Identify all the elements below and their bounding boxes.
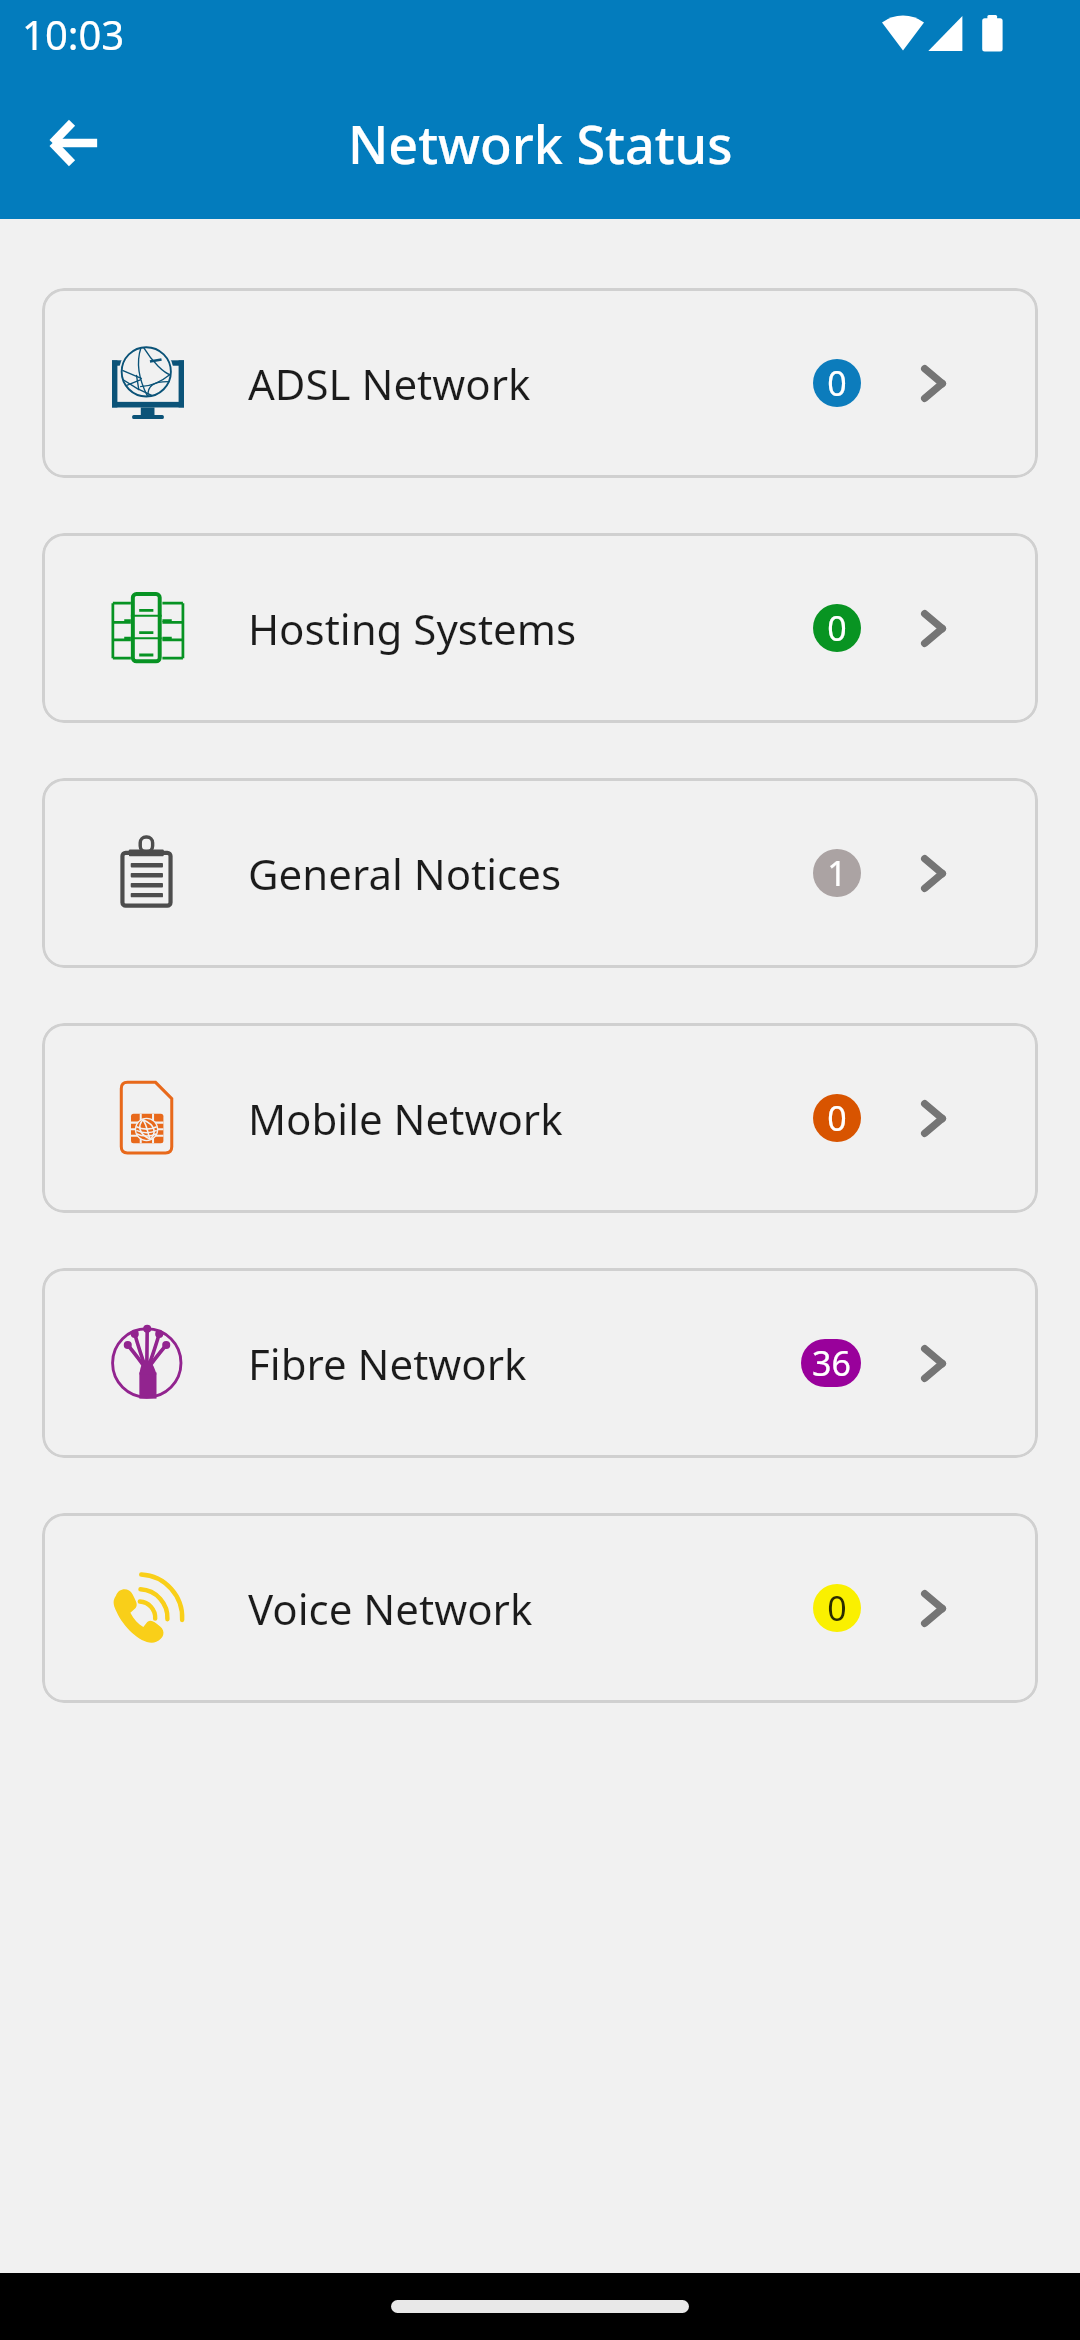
button[interactable]: Voice Network [42,1513,1038,1703]
staticText: 0 [827,1095,847,1141]
staticText: ADSL Network [248,355,531,412]
staticText: General Notices [248,845,562,902]
staticText: 0 [827,605,847,651]
staticText: 0 [827,360,847,406]
button[interactable]: Mobile Network [42,1023,1038,1213]
staticText: 0 [827,1585,847,1631]
staticText: Mobile Network [248,1090,563,1147]
staticText: Fibre Network [248,1335,527,1392]
button[interactable]: General Notices [42,778,1038,968]
staticText: Voice Network [248,1580,533,1637]
staticText: 36 [812,1340,851,1386]
button[interactable]: Hosting Systems [42,533,1038,723]
button[interactable]: ADSL Network [42,288,1038,478]
staticText: 10:03 [22,7,125,61]
button[interactable]: Back [28,98,118,188]
staticText: Hosting Systems [248,600,577,657]
button[interactable]: Fibre Network [42,1268,1038,1458]
staticText: Network Status [348,108,733,179]
staticText: 1 [827,850,847,896]
